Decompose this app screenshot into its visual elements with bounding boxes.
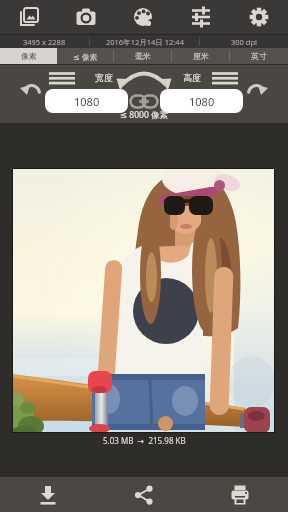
staticText: ≤ 像素 — [73, 51, 98, 62]
button[interactable] — [114, 0, 172, 34]
button[interactable]: ≤ 像素 — [57, 48, 114, 64]
button[interactable] — [0, 0, 57, 34]
button[interactable]: 像素 — [0, 48, 57, 64]
staticText: 5.03 MB → 215.98 KB — [103, 435, 186, 446]
staticText: 厘米 — [193, 51, 209, 61]
staticText: 像素 — [21, 51, 37, 61]
button[interactable] — [242, 78, 272, 104]
button[interactable] — [96, 477, 192, 512]
button[interactable] — [192, 477, 288, 512]
button[interactable] — [129, 93, 159, 109]
staticText: 毫米 — [135, 51, 151, 61]
staticText: ≤ 8000 像素 — [120, 109, 168, 121]
button[interactable]: 毫米 — [114, 48, 172, 64]
button[interactable]: 1080 — [160, 89, 243, 113]
staticText: 1080 — [189, 94, 215, 109]
button[interactable] — [16, 78, 46, 104]
staticText: 宽度 — [95, 72, 113, 83]
button[interactable] — [230, 0, 288, 34]
staticText: 3495 x 2288 — [23, 37, 66, 47]
button[interactable]: 英寸 — [230, 48, 288, 64]
button[interactable] — [210, 70, 240, 87]
staticText: 300 dpi — [231, 37, 257, 47]
button[interactable]: 1080 — [45, 89, 128, 113]
staticText: 1080 — [74, 94, 100, 109]
button[interactable] — [57, 0, 114, 34]
button[interactable] — [172, 0, 230, 34]
button[interactable] — [0, 477, 96, 512]
button[interactable]: 厘米 — [172, 48, 230, 64]
staticText: 英寸 — [251, 51, 267, 61]
staticText: 2016年12月14日 12:44 — [106, 37, 184, 47]
staticText: 高度 — [183, 72, 201, 83]
button[interactable] — [47, 70, 77, 87]
